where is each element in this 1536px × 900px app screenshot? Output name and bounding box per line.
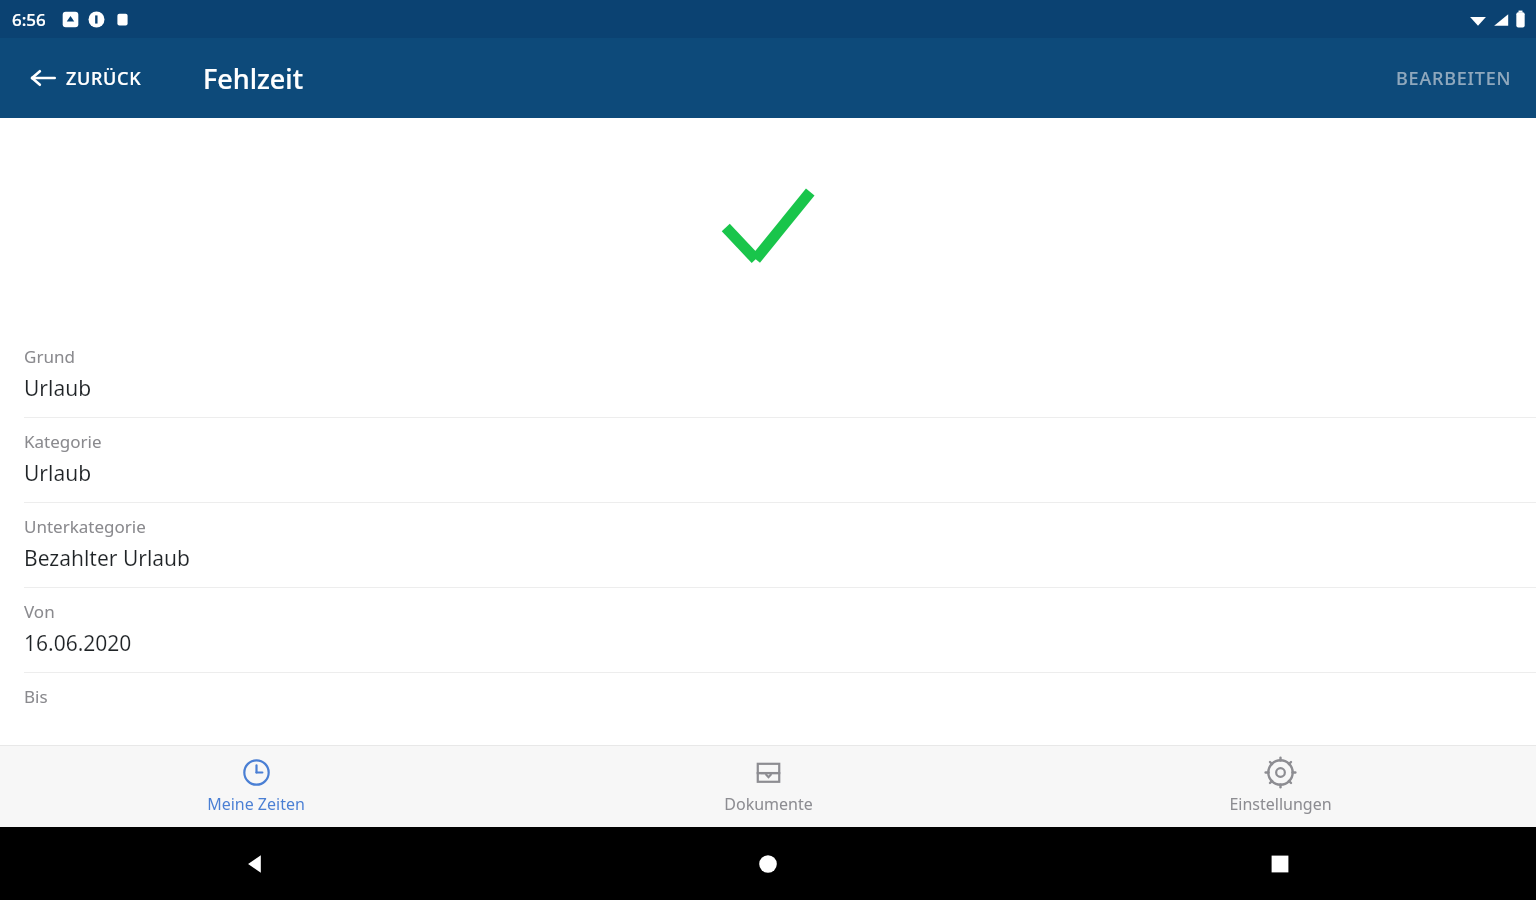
staticText: 6:56 xyxy=(12,8,46,31)
staticText: Dokumente xyxy=(724,793,813,815)
staticText: Einstellungen xyxy=(1229,793,1332,815)
staticText: Meine Zeiten xyxy=(207,793,305,815)
other: Meine Zeiten xyxy=(242,758,271,787)
button[interactable]: Von xyxy=(0,588,1536,673)
staticText: Grund xyxy=(24,345,75,368)
other: Einstellungen xyxy=(1266,758,1295,787)
button[interactable]: Recent apps xyxy=(1258,842,1302,886)
button[interactable]: BEARBEITEN xyxy=(1388,58,1520,99)
button[interactable]: Grund xyxy=(0,333,1536,418)
staticText: Von xyxy=(24,600,55,623)
button[interactable]: Back xyxy=(233,841,279,887)
staticText: Unterkategorie xyxy=(24,515,146,538)
staticText: Bis xyxy=(24,685,48,708)
staticText: Bezahlter Urlaub xyxy=(24,544,191,573)
button[interactable]: Einstellungen xyxy=(1024,746,1536,827)
button[interactable]: Home xyxy=(746,842,790,886)
staticText: Fehlzeit xyxy=(203,60,303,97)
button[interactable]: Kategorie xyxy=(0,418,1536,503)
button[interactable]: Unterkategorie xyxy=(0,503,1536,588)
button[interactable]: Meine Zeiten xyxy=(0,746,512,827)
staticText: Kategorie xyxy=(24,430,102,453)
button[interactable]: Dokumente xyxy=(512,746,1024,827)
staticText: Urlaub xyxy=(24,459,92,488)
other: Dokumente xyxy=(754,758,783,787)
button[interactable]: ZURÜCK xyxy=(24,59,148,97)
staticText: 16.06.2020 xyxy=(24,629,132,658)
button[interactable]: Bis xyxy=(0,673,1536,708)
staticText: BEARBEITEN xyxy=(1396,66,1512,91)
staticText: Urlaub xyxy=(24,374,92,403)
staticText: ZURÜCK xyxy=(66,66,142,91)
